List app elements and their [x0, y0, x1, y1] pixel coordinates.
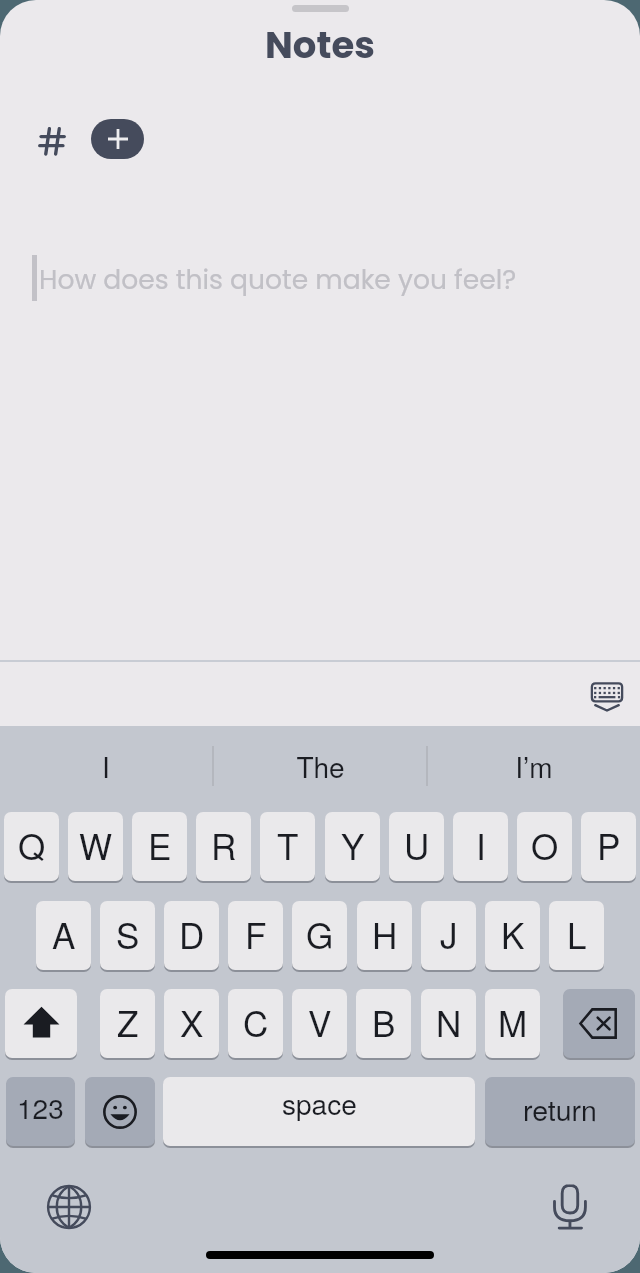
staticText: T	[277, 820, 299, 870]
button[interactable]: V	[292, 989, 347, 1058]
staticText: I’m	[515, 746, 553, 786]
staticText: 123	[17, 1087, 64, 1127]
button[interactable]: Add	[91, 119, 144, 159]
button[interactable]: I	[453, 812, 508, 881]
button[interactable]: space	[163, 1077, 475, 1146]
button[interactable]: P	[581, 812, 636, 881]
button[interactable]: F	[228, 901, 283, 970]
button[interactable]: Q	[4, 812, 59, 881]
staticText: R	[211, 820, 237, 870]
staticText: K	[501, 909, 525, 959]
button[interactable]: Change keyboard	[44, 1182, 94, 1232]
staticText: B	[372, 997, 396, 1047]
staticText: E	[148, 820, 172, 870]
staticText: I	[102, 746, 110, 786]
button[interactable]: D	[164, 901, 219, 970]
staticText: space	[282, 1083, 357, 1123]
button[interactable]: A	[36, 901, 91, 970]
button[interactable]: O	[517, 812, 572, 881]
button[interactable]: M	[485, 989, 540, 1058]
staticText: C	[243, 997, 269, 1047]
button[interactable]: Dictation	[545, 1182, 595, 1232]
button[interactable]: I	[0, 726, 212, 806]
button[interactable]: Shift	[5, 989, 77, 1058]
staticText: M	[498, 997, 528, 1047]
staticText: A	[52, 909, 76, 959]
staticText: N	[436, 997, 462, 1047]
staticText: D	[179, 909, 205, 959]
staticText: O	[531, 820, 559, 870]
staticText: How does this quote make you feel?	[39, 261, 517, 298]
button[interactable]: J	[421, 901, 476, 970]
button[interactable]: W	[68, 812, 123, 881]
button[interactable]: I’m	[428, 726, 640, 806]
staticText: H	[372, 909, 398, 959]
staticText: G	[306, 909, 334, 959]
staticText: P	[597, 820, 621, 870]
staticText: I	[476, 820, 486, 870]
button[interactable]: E	[132, 812, 187, 881]
staticText: Z	[117, 997, 139, 1047]
button[interactable]: return	[485, 1077, 635, 1146]
staticText: W	[79, 820, 113, 870]
staticText: F	[245, 909, 267, 959]
button[interactable]: Z	[100, 989, 155, 1058]
button[interactable]: L	[549, 901, 604, 970]
staticText: L	[567, 909, 587, 959]
button[interactable]: N	[421, 989, 476, 1058]
button[interactable]: The	[214, 726, 426, 806]
button[interactable]: G	[292, 901, 347, 970]
staticText: Notes	[265, 19, 375, 71]
button[interactable]: B	[356, 989, 411, 1058]
staticText: Y	[341, 820, 365, 870]
staticText: S	[116, 909, 140, 959]
staticText: X	[180, 997, 204, 1047]
button[interactable]: C	[228, 989, 283, 1058]
button[interactable]: Backspace	[563, 989, 635, 1058]
staticText: U	[404, 820, 430, 870]
button[interactable]: Emoji	[85, 1077, 155, 1146]
button[interactable]: X	[164, 989, 219, 1058]
button[interactable]: Tag	[30, 119, 74, 163]
button[interactable]: R	[196, 812, 251, 881]
staticText: Q	[18, 820, 46, 870]
staticText: The	[296, 746, 345, 786]
button[interactable]: S	[100, 901, 155, 970]
button[interactable]: Y	[325, 812, 380, 881]
button[interactable]: U	[389, 812, 444, 881]
button[interactable]: Numbers	[6, 1077, 75, 1146]
button[interactable]: Hide keyboard	[581, 672, 633, 724]
button[interactable]: T	[260, 812, 315, 881]
staticText: J	[440, 909, 458, 959]
staticText: return	[523, 1088, 597, 1129]
button[interactable]: H	[357, 901, 412, 970]
staticText: V	[308, 997, 332, 1047]
button[interactable]: K	[485, 901, 540, 970]
